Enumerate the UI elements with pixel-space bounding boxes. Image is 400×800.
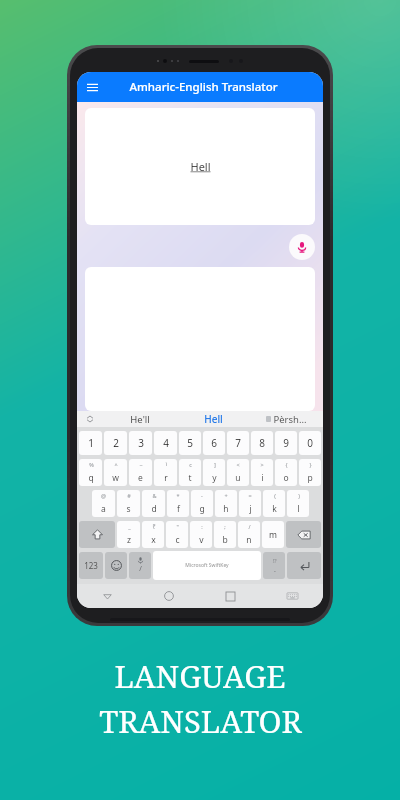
button[interactable]: Key: [79, 552, 103, 579]
button[interactable]: Menu: [84, 79, 100, 95]
button[interactable]: (: [263, 490, 285, 517]
button[interactable]: -: [191, 490, 213, 517]
staticText: q: [88, 472, 94, 484]
button[interactable]: Key: [79, 521, 115, 548]
staticText: <: [236, 461, 240, 468]
staticText: %: [89, 461, 94, 468]
button[interactable]: Hide keyboard: [261, 584, 323, 608]
button[interactable]: Key: [105, 552, 127, 579]
button[interactable]: 2: [104, 431, 127, 455]
staticText: /: [248, 523, 251, 530]
staticText: 8: [259, 436, 265, 450]
staticText: c: [175, 534, 180, 546]
button[interactable]: 8: [251, 431, 273, 455]
staticText: a: [101, 503, 106, 515]
button[interactable]: 1: [79, 431, 102, 455]
button[interactable]: &: [142, 490, 165, 517]
staticText: 1: [88, 436, 94, 450]
button[interactable]: 0: [299, 431, 321, 455]
staticText: He'll: [130, 413, 150, 426]
other: Shift: [91, 528, 104, 541]
button[interactable]: c: [179, 459, 201, 486]
button[interactable]: ": [166, 521, 188, 548]
button[interactable]: Voice input: [289, 234, 315, 260]
button[interactable]: Key: [129, 552, 151, 579]
button[interactable]: 7: [227, 431, 249, 455]
button[interactable]: 4: [154, 431, 177, 455]
other: Emoji: [111, 560, 122, 571]
staticText: l: [297, 503, 300, 515]
staticText: ١: [165, 461, 168, 467]
button[interactable]: 3: [129, 431, 152, 455]
button[interactable]: Menu: [77, 72, 323, 102]
button[interactable]: Back: [77, 584, 138, 608]
button[interactable]: #: [117, 490, 140, 517]
staticText: Pèrsh...: [273, 413, 307, 426]
staticText: >: [260, 461, 264, 468]
staticText: Amharic-English Translator: [129, 79, 278, 95]
button[interactable]: m: [262, 521, 284, 548]
staticText: ): [298, 492, 300, 499]
button[interactable]: Hell: [177, 411, 250, 427]
button[interactable]: Key: [263, 552, 285, 579]
staticText: r: [164, 472, 168, 484]
staticText: _: [128, 523, 131, 530]
staticText: ]: [214, 461, 216, 468]
button[interactable]: 9: [275, 431, 297, 455]
staticText: s: [126, 503, 131, 515]
staticText: v: [199, 534, 204, 546]
button[interactable]: ]: [203, 459, 225, 486]
button[interactable]: Key: [287, 552, 321, 579]
button[interactable]: @: [92, 490, 115, 517]
staticText: c: [189, 461, 192, 468]
button[interactable]: Microsoft SwiftKey: [153, 551, 261, 580]
staticText: x: [151, 534, 156, 546]
staticText: 123: [84, 560, 98, 571]
staticText: }: [309, 461, 312, 468]
staticText: 5: [187, 436, 193, 450]
staticText: i: [261, 472, 264, 484]
button[interactable]: 6: [203, 431, 225, 455]
staticText: ^: [114, 461, 118, 468]
staticText: h: [223, 503, 229, 515]
other: Backspace: [297, 528, 311, 542]
staticText: ;: [224, 523, 226, 530]
button[interactable]: Home: [138, 584, 199, 608]
staticText: Hell: [190, 159, 211, 174]
button[interactable]: *: [167, 490, 189, 517]
button[interactable]: Pèrsh...: [250, 411, 323, 427]
button[interactable]: ^: [104, 459, 127, 486]
button[interactable]: {: [275, 459, 297, 486]
button[interactable]: ;: [214, 521, 236, 548]
button[interactable]: >: [251, 459, 273, 486]
staticText: f: [177, 503, 180, 515]
button[interactable]: ): [287, 490, 309, 517]
staticText: (: [274, 492, 276, 499]
staticText: .: [274, 565, 276, 575]
button[interactable]: :: [190, 521, 212, 548]
button[interactable]: +: [215, 490, 237, 517]
button[interactable]: Expand suggestions: [77, 411, 103, 427]
button[interactable]: 5: [179, 431, 201, 455]
staticText: e: [138, 472, 143, 484]
button[interactable]: Recents: [199, 584, 261, 608]
staticText: w: [112, 472, 119, 484]
staticText: 3: [138, 436, 144, 450]
button[interactable]: }: [299, 459, 321, 486]
other: Voice typing: [137, 557, 144, 564]
button[interactable]: _: [117, 521, 140, 548]
button[interactable]: <: [227, 459, 249, 486]
button[interactable]: ١: [154, 459, 177, 486]
button[interactable]: He'll: [103, 411, 177, 427]
button[interactable]: Key: [286, 521, 321, 548]
staticText: 2: [113, 436, 119, 450]
staticText: LANGUAGE: [114, 655, 286, 697]
button[interactable]: /: [238, 521, 260, 548]
button[interactable]: ₹: [142, 521, 164, 548]
button[interactable]: Hell: [85, 108, 315, 225]
button[interactable]: %: [79, 459, 102, 486]
button[interactable]: ~: [129, 459, 152, 486]
button[interactable]: =: [239, 490, 261, 517]
staticText: o: [283, 472, 289, 484]
